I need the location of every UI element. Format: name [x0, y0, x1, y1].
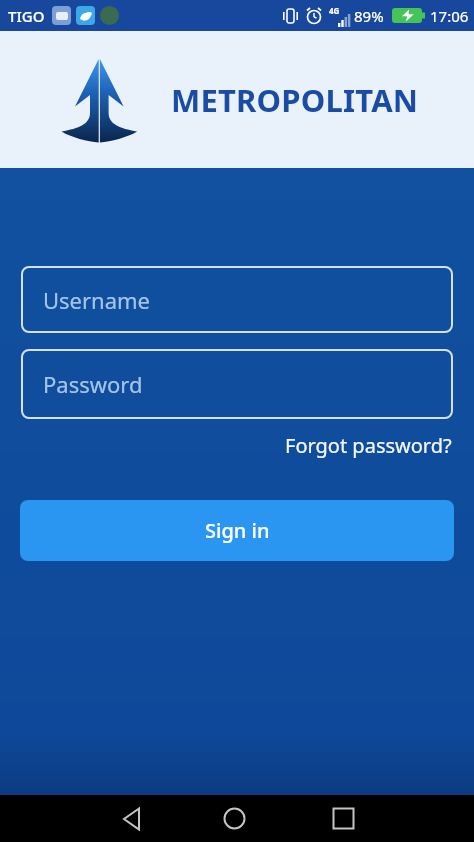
- staticText: Forgot password?: [285, 432, 452, 459]
- staticText: Sign in: [205, 517, 270, 544]
- staticText: 89%: [354, 6, 384, 26]
- staticText: Password: [43, 369, 143, 399]
- button[interactable]: Forgot password?: [285, 432, 452, 459]
- staticText: TIGO: [8, 6, 45, 26]
- button[interactable]: [223, 807, 246, 830]
- button[interactable]: Username: [21, 266, 453, 333]
- staticText: METROPOLITAN: [171, 79, 419, 121]
- staticText: 4G: [329, 5, 340, 16]
- staticText: 17:06: [430, 6, 469, 26]
- staticText: Username: [43, 285, 151, 315]
- button[interactable]: [120, 807, 144, 831]
- button[interactable]: Sign in: [20, 500, 454, 561]
- button[interactable]: Password: [21, 349, 453, 419]
- button[interactable]: [332, 807, 355, 830]
